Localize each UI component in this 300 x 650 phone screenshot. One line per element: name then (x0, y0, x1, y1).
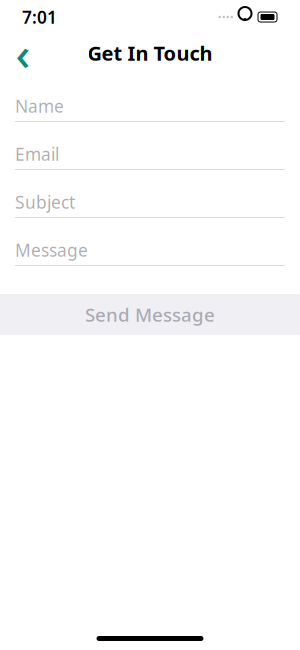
button[interactable]: Send Message (0, 294, 300, 335)
staticText: 7:01 (22, 5, 57, 28)
staticText: Message (15, 238, 88, 261)
button[interactable]: Back (6, 36, 40, 70)
staticText: Subject (15, 190, 75, 213)
staticText: Get In Touch (87, 40, 212, 66)
staticText: Name (15, 94, 64, 117)
staticText: Send Message (85, 302, 215, 327)
staticText: Email (15, 142, 59, 165)
staticText: ‹ (15, 23, 30, 83)
